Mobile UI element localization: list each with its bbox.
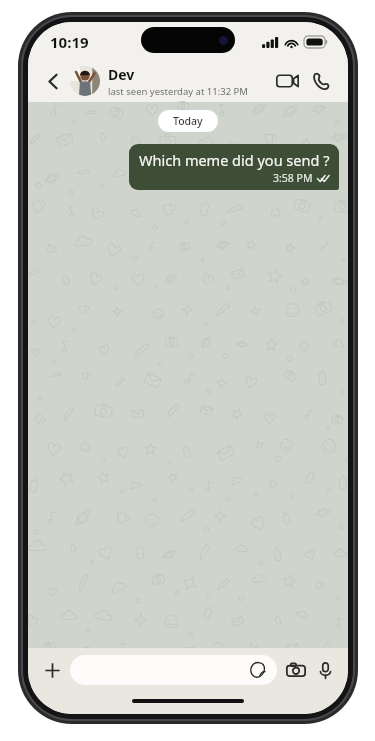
staticText: 3:58 PM <box>273 171 313 185</box>
button[interactable]: Dev <box>70 60 270 102</box>
button[interactable]: Which meme did you send ? <box>129 144 339 190</box>
button[interactable]: Voice call <box>304 64 338 98</box>
staticText: Dev <box>108 65 135 84</box>
button[interactable]: Camera <box>281 655 311 685</box>
button[interactable]: Voice message <box>311 656 339 684</box>
other: Stickers <box>249 661 267 679</box>
staticText: 10:19 <box>50 32 89 52</box>
staticText: Which meme did you send ? <box>139 150 330 170</box>
button[interactable]: Video call <box>270 64 304 98</box>
staticText: last seen yesterday at 11:32 PM <box>108 85 248 98</box>
button[interactable]: Attach <box>37 655 67 685</box>
button[interactable]: Today <box>158 110 218 132</box>
staticText: Today <box>173 114 203 128</box>
button[interactable]: Back <box>38 66 68 96</box>
button[interactable]: Stickers <box>70 655 277 685</box>
